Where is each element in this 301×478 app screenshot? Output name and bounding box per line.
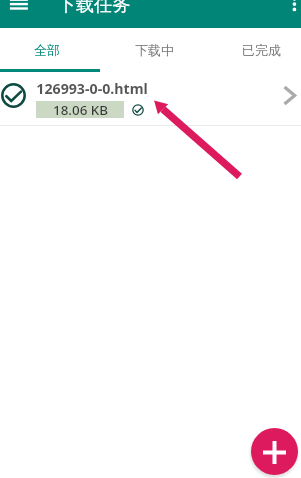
button[interactable]: 下载中: [104, 28, 204, 72]
staticText: 18.06 KB: [53, 101, 108, 118]
staticText: 下载中: [135, 42, 174, 58]
button[interactable]: 126993-0-0.html: [0, 72, 301, 125]
button[interactable]: 已完成: [211, 28, 301, 72]
staticText: 全部: [34, 42, 60, 58]
staticText: 下载任务: [57, 0, 131, 16]
button[interactable]: More options: [275, 0, 301, 12]
staticText: 已完成: [242, 42, 281, 58]
staticText: 126993-0-0.html: [36, 79, 148, 98]
button[interactable]: Menu: [0, 0, 37, 12]
button[interactable]: Add: [251, 428, 298, 475]
button[interactable]: 全部: [0, 28, 97, 72]
